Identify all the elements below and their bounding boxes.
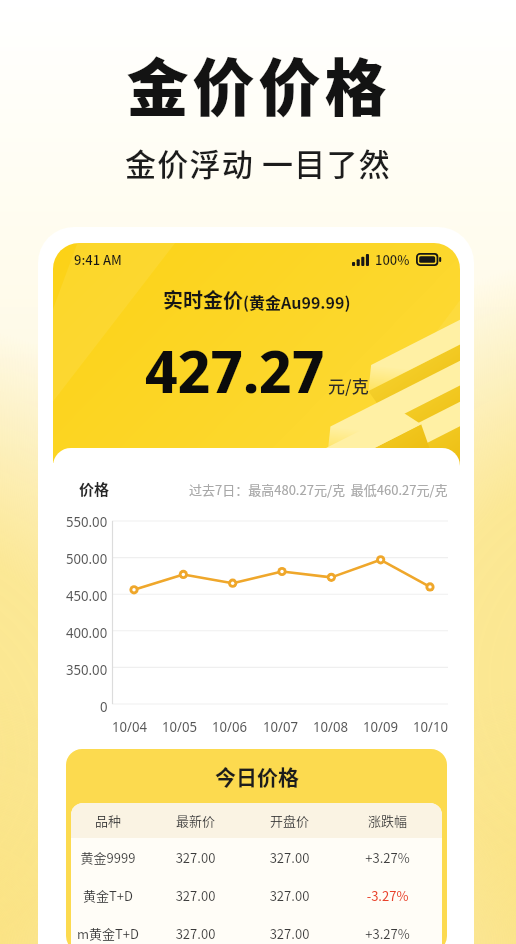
staticText: 350.00 (66, 660, 108, 679)
staticText: 10/09 (363, 717, 398, 736)
staticText: 9:41 AM (74, 250, 122, 269)
button[interactable]: 黄金9999 (71, 838, 442, 876)
staticText: 过去7日：最高480.27元/克 最低460.27元/克 (189, 480, 448, 499)
staticText: 327.00 (246, 886, 333, 905)
button[interactable]: 今日价格 (66, 749, 447, 944)
staticText: +3.27% (333, 924, 442, 943)
staticText: 327.00 (145, 886, 246, 905)
staticText: 10/04 (112, 717, 147, 736)
staticText: 元/克 (328, 373, 369, 398)
staticText: 10/07 (263, 717, 298, 736)
staticText: 黄金9999 (71, 848, 145, 867)
staticText: 今日价格 (215, 761, 299, 791)
staticText: 实时金价 (163, 285, 243, 314)
staticText: (黄金Au99.99) (243, 290, 351, 313)
staticText: 10/05 (162, 717, 197, 736)
staticText: 427.27 (145, 329, 325, 411)
staticText: 327.00 (145, 924, 246, 943)
button[interactable]: 品种 (71, 803, 442, 838)
staticText: 0 (100, 697, 108, 716)
staticText: 10/08 (313, 717, 348, 736)
button[interactable]: 黄金T+D (71, 876, 442, 914)
staticText: 327.00 (246, 924, 333, 943)
staticText: 327.00 (246, 848, 333, 867)
staticText: m黄金T+D (71, 924, 145, 943)
staticText: 涨跌幅 (333, 811, 442, 830)
staticText: 500.00 (66, 549, 108, 568)
staticText: -3.27% (333, 886, 442, 905)
staticText: 价格 (79, 478, 110, 500)
staticText: 327.00 (145, 848, 246, 867)
staticText: 金价价格 (126, 39, 391, 129)
staticText: 100% (375, 250, 410, 269)
staticText: 550.00 (66, 512, 108, 531)
staticText: 450.00 (66, 586, 108, 605)
staticText: 金价浮动 一目了然 (125, 140, 391, 185)
staticText: 黄金T+D (71, 886, 145, 905)
staticText: 开盘价 (246, 811, 333, 830)
button[interactable]: m黄金T+D (71, 914, 442, 944)
staticText: 品种 (71, 811, 145, 830)
staticText: 400.00 (66, 623, 108, 642)
staticText: 10/06 (212, 717, 247, 736)
staticText: +3.27% (333, 848, 442, 867)
staticText: 10/10 (413, 717, 448, 736)
staticText: 最新价 (145, 811, 246, 830)
